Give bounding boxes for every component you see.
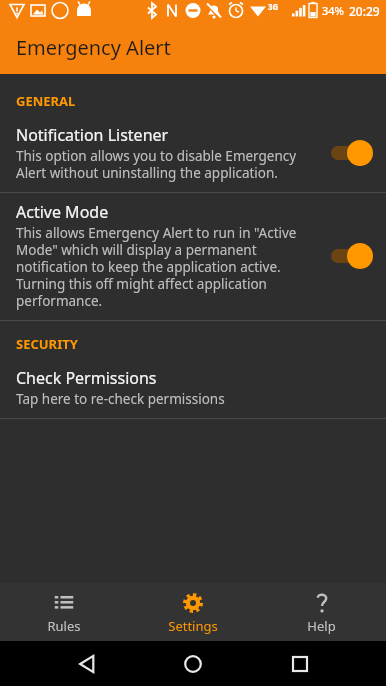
staticText: Rules [47,617,81,635]
button[interactable]: Help [257,583,386,635]
staticText: Notification Listener [16,124,169,146]
staticText: GENERAL [16,92,76,110]
staticText: 20:29 [349,3,380,19]
button[interactable]: Settings [128,583,257,635]
button[interactable]: Check Permissions [0,359,386,418]
button[interactable]: Rules [0,583,128,635]
staticText: Active Mode [16,201,109,223]
button[interactable]: Home [173,644,213,684]
staticText: SECURITY [16,335,78,353]
staticText: This allows Emergency Alert to run in "A… [16,224,320,310]
staticText: This option allows you to disable Emerge… [16,147,320,182]
staticText: Check Permissions [16,367,157,389]
staticText: Help [307,617,336,635]
staticText: Emergency Alert [16,34,171,61]
staticText: Settings [168,617,218,635]
staticText: 3G [268,1,279,12]
button[interactable]: Active Mode [0,193,386,320]
button[interactable]: Recent apps [280,644,320,684]
button[interactable]: Notification Listener [0,116,386,192]
staticText: Tap here to re-check permissions [16,390,225,408]
staticText: 34% [322,3,344,18]
button[interactable]: Toggle [328,243,374,269]
button[interactable]: Back [67,644,107,684]
button[interactable]: Toggle [328,140,374,166]
